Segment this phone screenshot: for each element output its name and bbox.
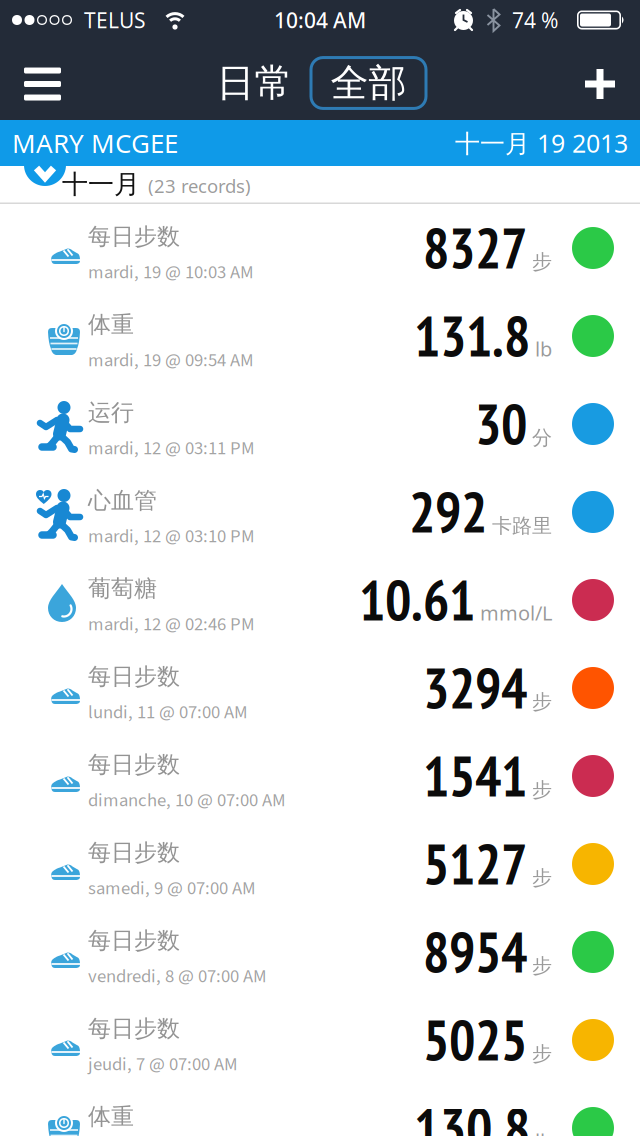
staticText: jeudi, 7 @ 07:00 AM: [88, 1051, 238, 1078]
staticText: dimanche, 10 @ 07:00 AM: [88, 787, 286, 814]
staticText: 130.8: [414, 1092, 530, 1136]
staticText: mardi, 12 @ 03:11 PM: [88, 435, 255, 462]
staticText: 十一月: [62, 168, 140, 201]
button[interactable]: 日常: [216, 59, 292, 107]
staticText: 每日步数: [88, 926, 180, 955]
button[interactable]: 全部: [309, 56, 427, 110]
button[interactable]: 体重: [0, 292, 640, 380]
staticText: 步: [532, 953, 552, 978]
button[interactable]: 运行: [0, 380, 640, 468]
staticText: 3294: [423, 652, 527, 724]
staticText: (23 records): [148, 173, 251, 198]
staticText: 74 %: [512, 6, 558, 34]
staticText: mmol/L: [480, 599, 552, 626]
staticText: 十一月 19 2013: [455, 126, 628, 160]
staticText: 1541: [423, 740, 527, 812]
staticText: mardi, 19 @ 10:03 AM: [88, 259, 254, 286]
staticText: 每日步数: [88, 838, 180, 867]
staticText: 每日步数: [88, 750, 180, 779]
button[interactable]: 每日步数: [0, 732, 640, 820]
button[interactable]: 每日步数: [0, 996, 640, 1084]
staticText: 步: [532, 777, 552, 802]
staticText: 每日步数: [88, 662, 180, 691]
staticText: 步: [532, 689, 552, 714]
staticText: 心血管: [88, 486, 157, 515]
staticText: MARY MCGEE: [12, 125, 178, 161]
staticText: mardi, 12 @ 03:10 PM: [88, 523, 255, 550]
staticText: 分: [532, 425, 552, 450]
staticText: lb: [535, 1127, 552, 1136]
staticText: 卡路里: [492, 513, 552, 538]
staticText: 10:04 AM: [274, 6, 366, 34]
staticText: 8327: [423, 212, 527, 284]
staticText: 葡萄糖: [88, 574, 157, 603]
staticText: lb: [535, 335, 552, 362]
button[interactable]: Add record: [585, 53, 640, 107]
staticText: TELUS: [84, 6, 146, 34]
staticText: 5025: [423, 1004, 527, 1076]
button[interactable]: 每日步数: [0, 820, 640, 908]
staticText: 步: [532, 1041, 552, 1066]
staticText: 292: [409, 476, 487, 548]
staticText: 日常: [216, 59, 292, 107]
staticText: 每日步数: [88, 1014, 180, 1043]
staticText: vendredi, 8 @ 07:00 AM: [88, 963, 267, 990]
staticText: 体重: [88, 310, 134, 339]
button[interactable]: Collapse month: [24, 165, 66, 186]
staticText: mardi, 19 @ 09:54 AM: [88, 347, 254, 374]
staticText: 体重: [88, 1102, 134, 1131]
staticText: mardi, 12 @ 02:46 PM: [88, 611, 255, 638]
staticText: 30: [475, 388, 527, 460]
button[interactable]: 心血管: [0, 468, 640, 556]
staticText: 全部: [330, 59, 406, 107]
staticText: 每日步数: [88, 222, 180, 251]
staticText: lundi, 11 @ 07:00 AM: [88, 699, 248, 726]
staticText: 步: [532, 865, 552, 890]
button[interactable]: 每日步数: [0, 908, 640, 996]
staticText: samedi, 9 @ 07:00 AM: [88, 875, 256, 902]
staticText: 运行: [88, 398, 134, 427]
button[interactable]: Menu: [0, 49, 61, 110]
button[interactable]: 每日步数: [0, 204, 640, 292]
staticText: 10.61: [359, 564, 475, 636]
staticText: 8954: [423, 916, 527, 988]
button[interactable]: 每日步数: [0, 644, 640, 732]
button[interactable]: 体重: [0, 1084, 640, 1136]
button[interactable]: 葡萄糖: [0, 556, 640, 644]
staticText: 5127: [423, 828, 527, 900]
staticText: 131.8: [414, 300, 530, 372]
staticText: 步: [532, 249, 552, 274]
